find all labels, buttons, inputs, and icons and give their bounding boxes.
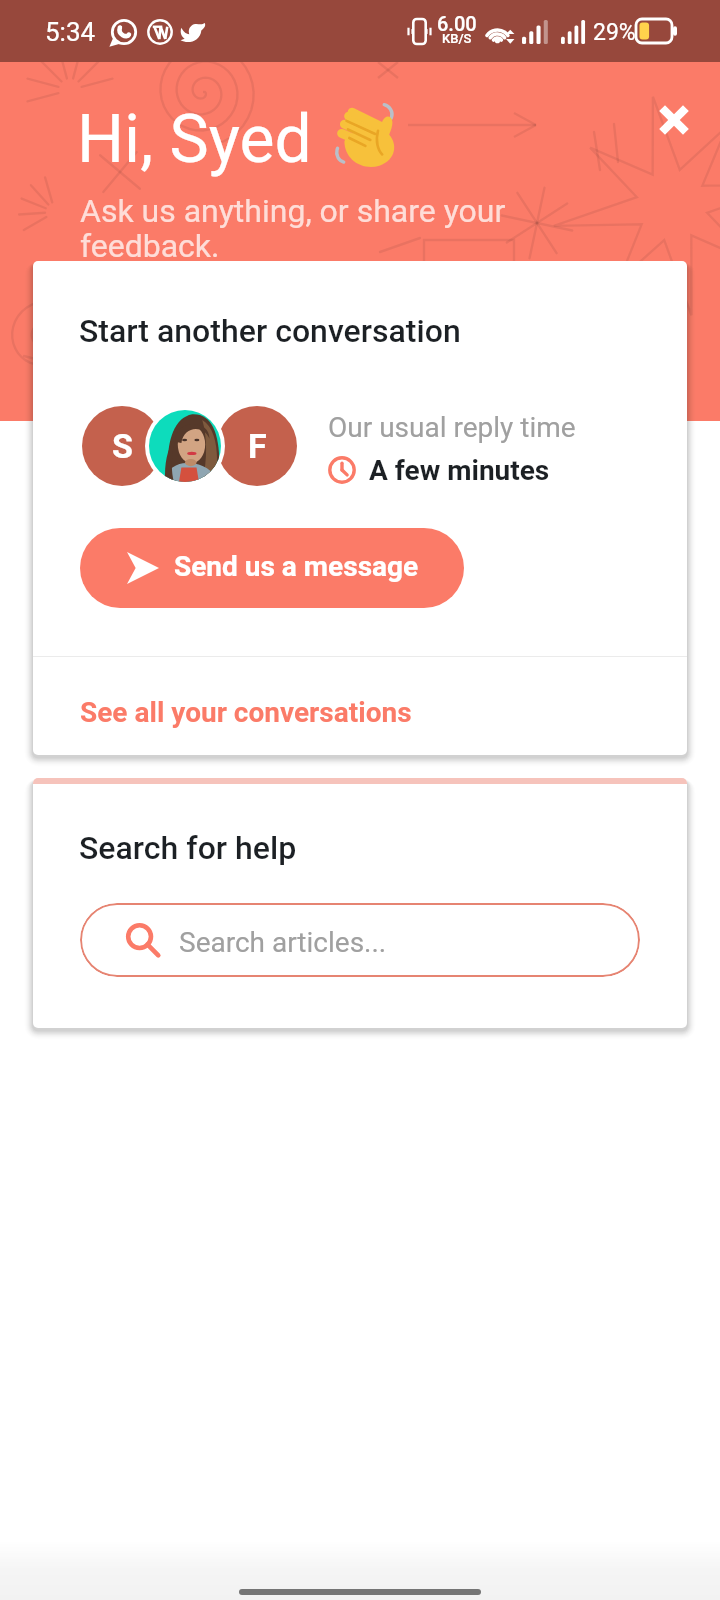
staticText: A few minutes (369, 454, 550, 487)
staticText: Our usual reply time (328, 411, 576, 444)
staticText: Start another conversation (79, 312, 461, 350)
staticText: Hi, Syed (77, 101, 312, 178)
staticText: 29% (593, 19, 636, 46)
staticText: See all your conversations (80, 696, 412, 729)
button[interactable]: Send us a message (80, 528, 464, 608)
staticText: Search articles... (179, 926, 387, 959)
staticText: Search for help (79, 829, 297, 867)
button[interactable]: Close (642, 88, 706, 152)
staticText: F (248, 426, 267, 466)
button[interactable]: Search articles (80, 903, 640, 977)
staticText: 6.00 (437, 12, 477, 35)
button[interactable]: See all your conversations (33, 657, 687, 755)
staticText: S (112, 426, 133, 466)
staticText: 5:34 (45, 17, 96, 47)
staticText: Ask us anything, or share your feedback. (80, 192, 506, 265)
staticText: KB/S (442, 31, 472, 46)
staticText: Send us a message (174, 550, 419, 583)
